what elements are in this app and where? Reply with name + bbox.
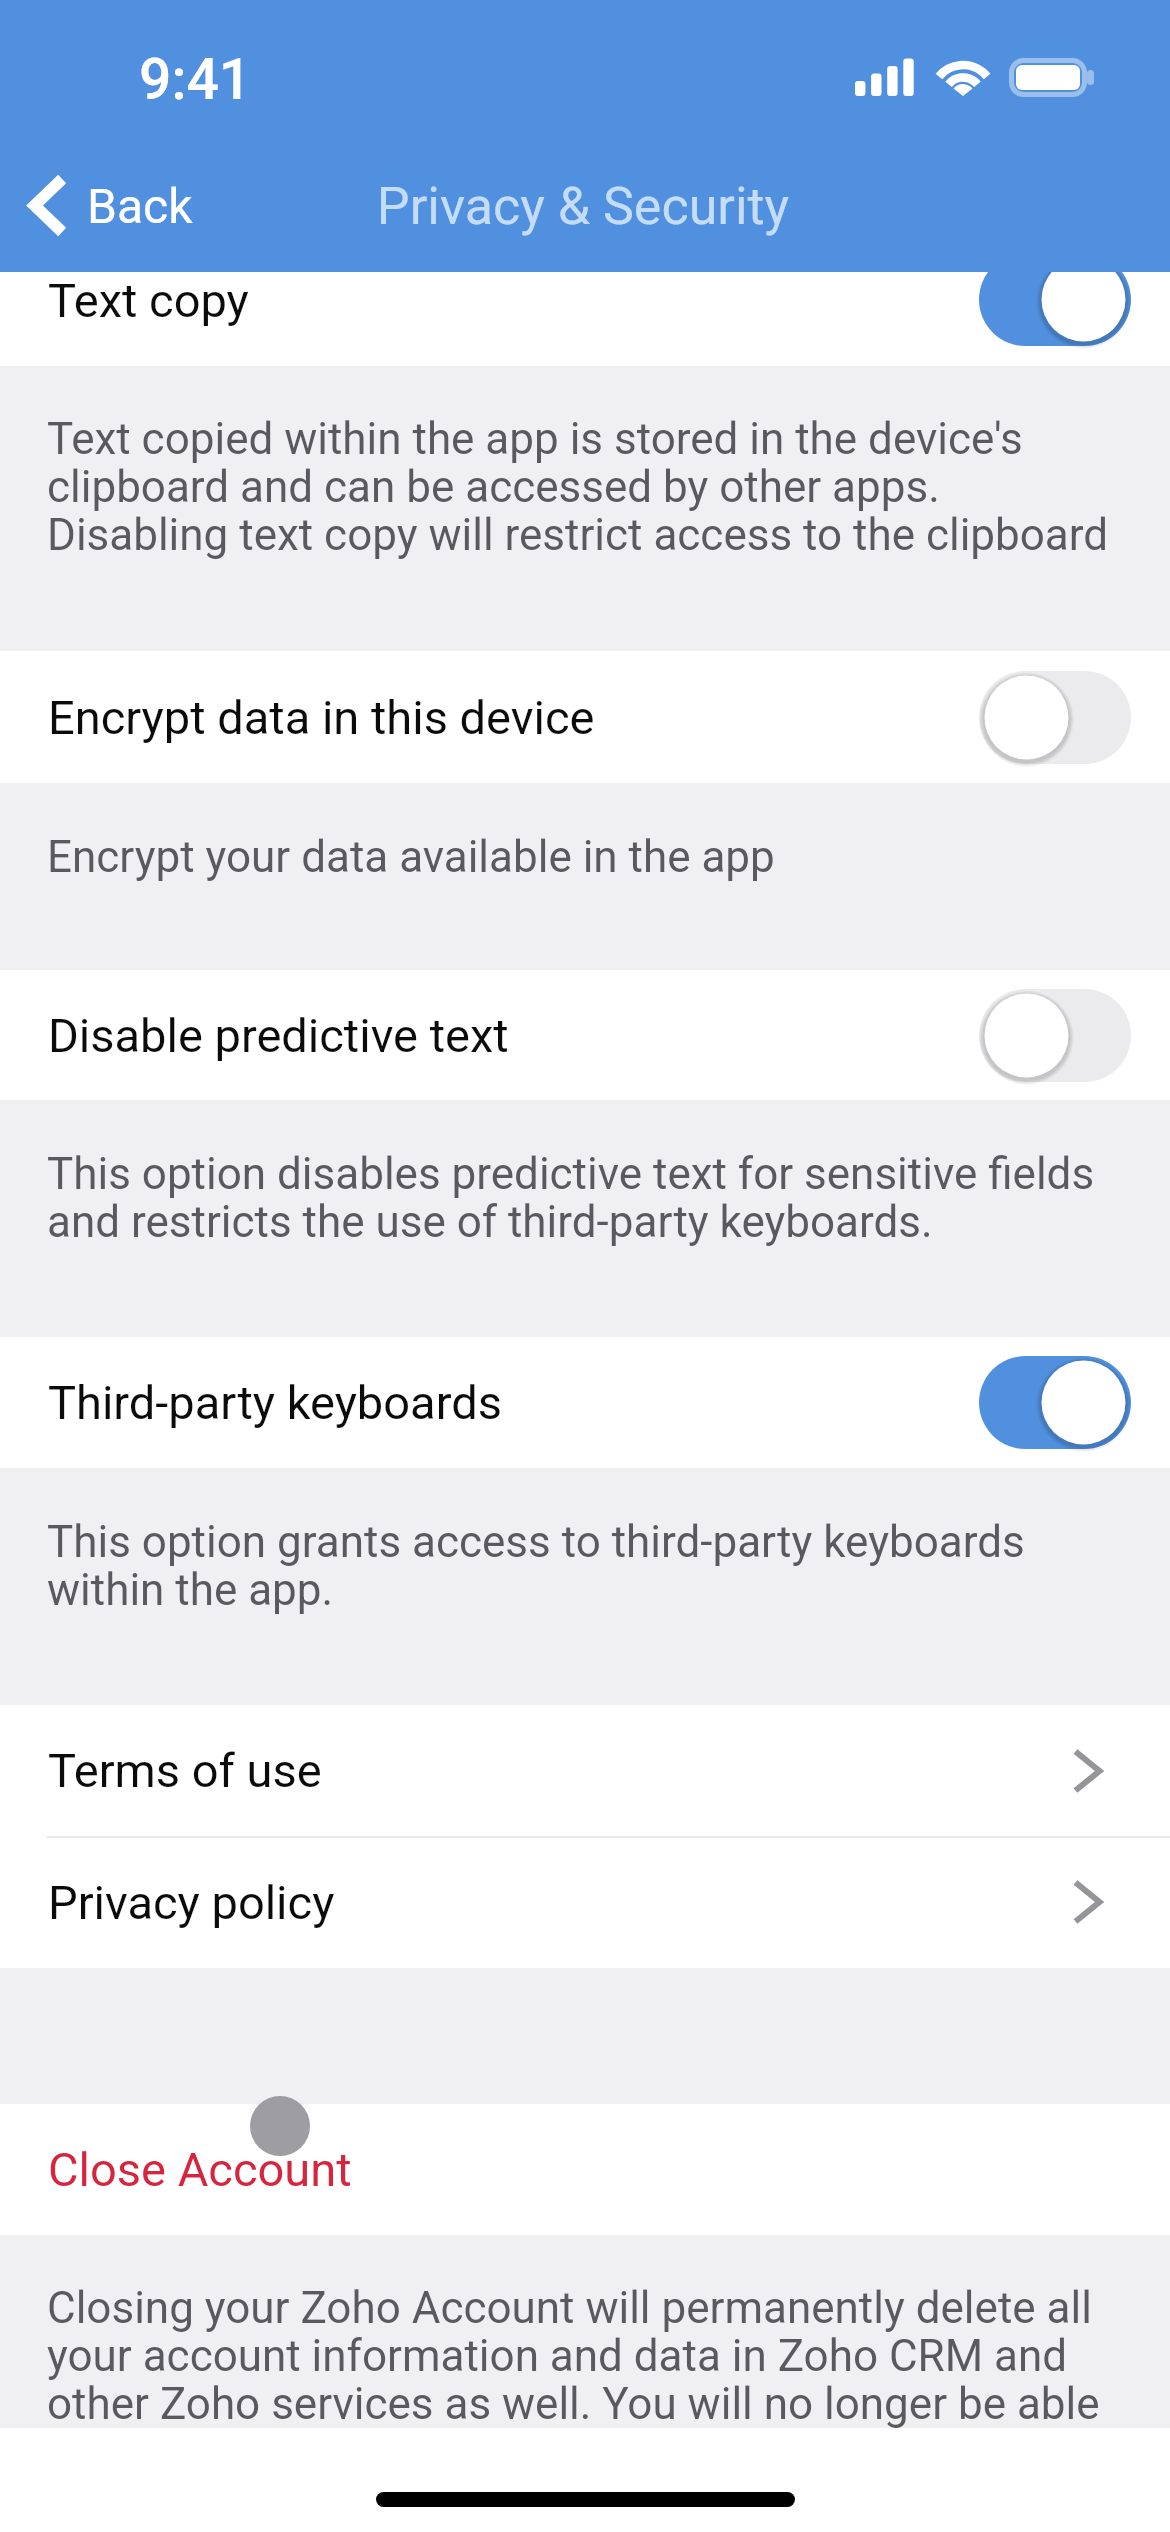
button[interactable]: Encrypt data in this device: [0, 651, 1170, 783]
staticText: This option disables predictive text for…: [47, 1148, 1095, 1248]
staticText: Encrypt data in this device: [48, 690, 979, 745]
button[interactable]: Privacy policy: [0, 1836, 1170, 1968]
button[interactable]: Terms of use: [0, 1705, 1170, 1836]
staticText: Closing your Zoho Account will permanent…: [47, 2282, 1100, 2428]
staticText: Text copied within the app is stored in …: [47, 413, 1109, 561]
button[interactable]: Encrypt data in this device: [979, 671, 1131, 764]
staticText: This option grants access to third-party…: [47, 1516, 1025, 1616]
button[interactable]: Close Account: [0, 2104, 1170, 2235]
button[interactable]: Third-party keyboards: [0, 1337, 1170, 1468]
staticText: Close Account: [48, 2142, 352, 2197]
button[interactable]: Disable predictive text: [979, 989, 1131, 1082]
staticText: Privacy & Security: [0, 176, 1168, 237]
staticText: Third-party keyboards: [48, 1375, 979, 1430]
button[interactable]: Text copy: [0, 272, 1170, 366]
button[interactable]: Back: [8, 167, 219, 248]
staticText: Disable predictive text: [48, 1008, 979, 1063]
staticText: Encrypt your data available in the app: [47, 831, 775, 883]
staticText: Privacy policy: [48, 1875, 1072, 1930]
button[interactable]: Disable predictive text: [0, 970, 1170, 1100]
staticText: 9:41: [139, 46, 252, 113]
staticText: Back: [87, 178, 193, 234]
button[interactable]: Third-party keyboards: [979, 1356, 1131, 1449]
staticText: Terms of use: [48, 1743, 1072, 1798]
button[interactable]: Text copy: [979, 272, 1131, 346]
staticText: Text copy: [48, 273, 249, 328]
